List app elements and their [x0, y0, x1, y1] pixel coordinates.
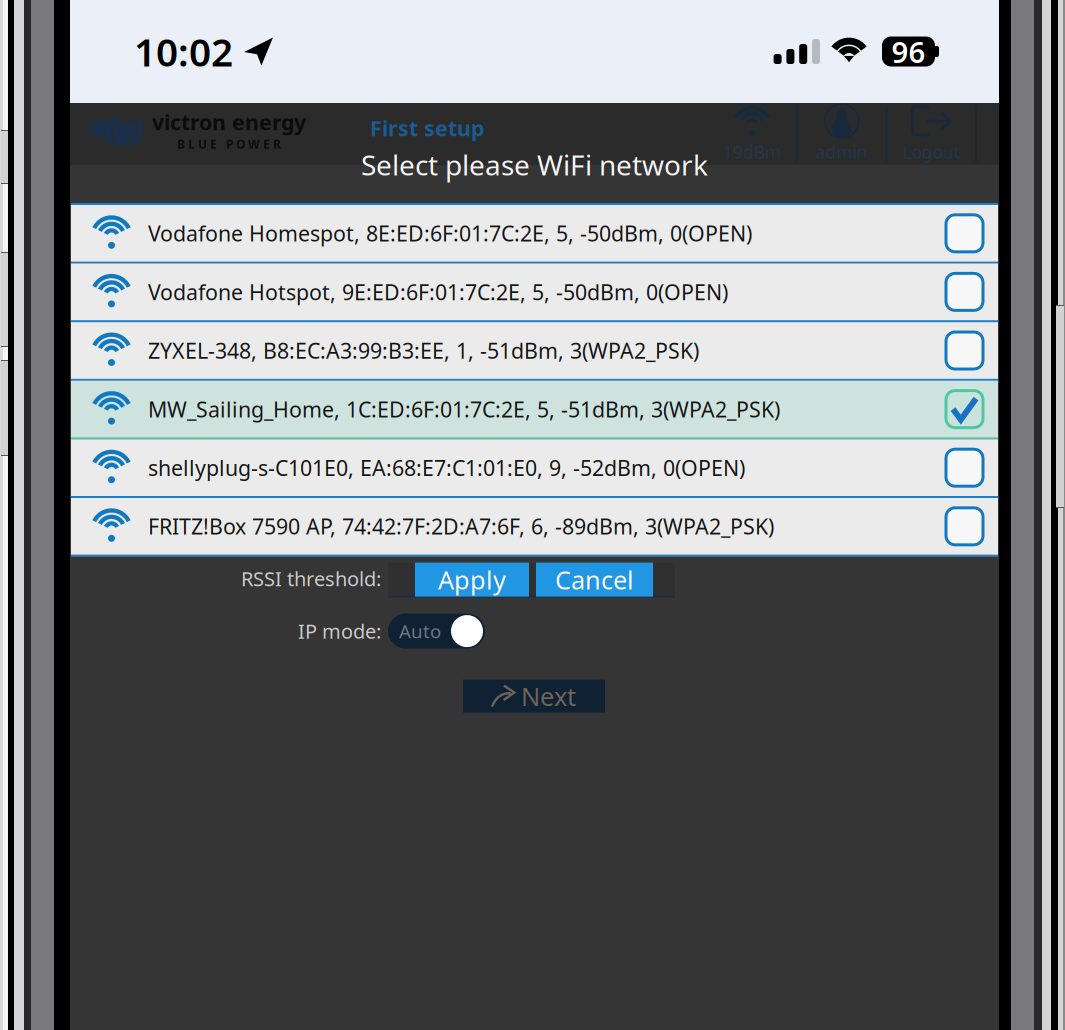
staticText: shellyplug-s-C101E0, EA:68:E7:C1:01:E0, … — [148, 453, 745, 482]
staticText: FRITZ!Box 7590 AP, 74:42:7F:2D:A7:6F, 6,… — [148, 512, 774, 540]
button[interactable]: ZYXEL-348, B8:EC:A3:99:B3:EE, 1, -51dBm,… — [71, 322, 998, 381]
button[interactable]: Next — [463, 680, 605, 713]
button[interactable]: Cancel — [536, 563, 653, 597]
staticText: Auto — [399, 619, 441, 643]
staticText: ZYXEL-348, B8:EC:A3:99:B3:EE, 1, -51dBm,… — [148, 336, 699, 365]
button[interactable]: shellyplug-s-C101E0, EA:68:E7:C1:01:E0, … — [71, 439, 998, 498]
button[interactable]: Apply — [415, 563, 529, 597]
button[interactable]: 19dBm — [708, 103, 796, 165]
staticText: Next — [521, 679, 576, 713]
staticText: Apply — [438, 563, 506, 596]
button[interactable]: Vodafone Homespot, 8E:ED:6F:01:7C:2E, 5,… — [71, 205, 998, 264]
staticText: admin — [816, 140, 868, 163]
button[interactable]: Auto — [388, 614, 485, 649]
button[interactable]: Vodafone Hotspot, 9E:ED:6F:01:7C:2E, 5, … — [71, 264, 998, 322]
staticText: 10:02 — [134, 26, 233, 77]
staticText: Vodafone Hotspot, 9E:ED:6F:01:7C:2E, 5, … — [148, 278, 728, 306]
staticText: IP mode: — [298, 618, 381, 644]
staticText: B L U E P O W E R — [177, 136, 281, 152]
staticText: RSSI threshold: — [241, 565, 381, 592]
staticText: 96 — [891, 32, 925, 71]
staticText: MW_Sailing_Home, 1C:ED:6F:01:7C:2E, 5, -… — [148, 395, 780, 423]
staticText: First setup — [370, 114, 484, 142]
button[interactable]: MW_Sailing_Home, 1C:ED:6F:01:7C:2E, 5, -… — [71, 381, 998, 439]
button[interactable]: FRITZ!Box 7590 AP, 74:42:7F:2D:A7:6F, 6,… — [71, 498, 998, 557]
staticText: victron energy — [152, 108, 306, 136]
staticText: Logout — [903, 140, 960, 163]
staticText: 19dBm — [723, 141, 781, 164]
staticText: Select please WiFi network — [361, 146, 708, 183]
staticText: Vodafone Homespot, 8E:ED:6F:01:7C:2E, 5,… — [148, 219, 752, 247]
button[interactable]: admin — [798, 103, 886, 165]
staticText: Cancel — [555, 563, 634, 596]
button[interactable]: Logout — [887, 103, 975, 165]
